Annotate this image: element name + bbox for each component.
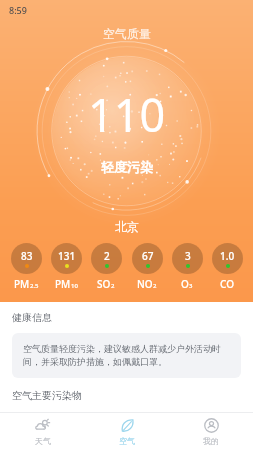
staticText: 健康信息 <box>12 311 52 324</box>
button[interactable]: 1.0 <box>208 243 246 291</box>
staticText: 我的 <box>203 436 219 446</box>
staticText: 2 <box>104 249 110 263</box>
staticText: 3 <box>185 249 191 263</box>
staticText: 北京 <box>115 219 139 234</box>
staticText: 83 <box>21 249 33 263</box>
staticText: 轻度污染 <box>101 159 153 175</box>
staticText: 110 <box>88 84 166 145</box>
staticText: 空气质量 <box>103 26 151 41</box>
staticText: 2.5 <box>30 282 39 290</box>
staticText: PM <box>14 277 30 291</box>
staticText: PM <box>55 277 71 291</box>
staticText: NO <box>137 277 153 291</box>
staticText: 1.0 <box>220 249 235 263</box>
other: 天气 <box>35 418 50 433</box>
staticText: 空气 <box>119 436 135 446</box>
staticText: O <box>181 277 189 291</box>
staticText: 2 <box>153 282 157 290</box>
staticText: 空气主要污染物 <box>12 389 82 402</box>
other: 我的 <box>204 418 219 433</box>
button[interactable]: 131 <box>47 243 85 291</box>
button[interactable]: 空气 <box>85 413 169 450</box>
staticText: 空气质量轻度污染，建议敏感人群减少户外活动时间，并采取防护措施，如佩戴口罩。 <box>23 343 230 368</box>
button[interactable]: 67 <box>128 243 166 291</box>
button[interactable]: 2 <box>87 243 125 291</box>
button[interactable]: 天气 <box>0 413 85 450</box>
staticText: 131 <box>58 249 76 263</box>
staticText: 2 <box>111 282 115 290</box>
staticText: 天气 <box>35 436 51 446</box>
staticText: 67 <box>142 249 154 263</box>
button[interactable]: 83 <box>7 243 45 291</box>
button[interactable]: 3 <box>168 243 206 291</box>
staticText: CO <box>220 277 234 291</box>
other: 空气 <box>120 418 135 433</box>
staticText: 10 <box>71 282 78 290</box>
button[interactable]: 我的 <box>169 413 253 450</box>
staticText: 8:59 <box>9 4 27 16</box>
staticText: SO <box>97 277 111 291</box>
staticText: 3 <box>189 282 193 290</box>
